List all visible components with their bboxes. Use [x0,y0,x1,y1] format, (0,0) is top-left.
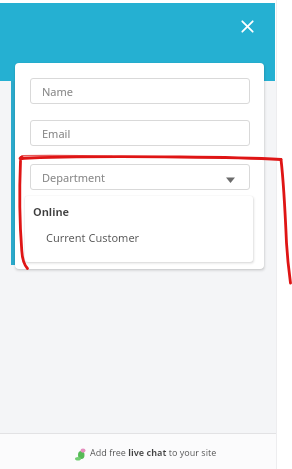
staticText: Name [42,84,74,99]
staticText: Add free live chat to your site [90,446,217,458]
staticText: Email [42,126,71,141]
button[interactable]: Name [30,78,250,104]
button[interactable]: Email [30,120,250,146]
button[interactable] [0,3,275,81]
button[interactable]: Department [30,164,250,190]
button[interactable]: Online [25,200,253,222]
button[interactable] [238,17,257,36]
button[interactable]: Current Customer [25,226,253,248]
staticText: Department [42,170,105,185]
button[interactable]: Add free live chat to your site [90,445,232,459]
staticText: Current Customer [46,230,140,245]
staticText: Online [33,204,70,219]
